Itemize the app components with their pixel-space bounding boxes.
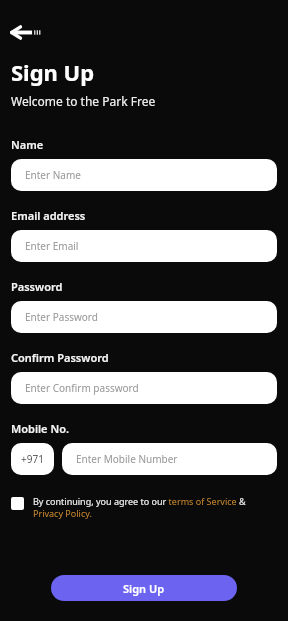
button[interactable]: +971 [11, 443, 54, 475]
staticText: Enter Email [25, 239, 79, 253]
staticText: +971 [21, 452, 44, 466]
button[interactable]: Enter Confirm password [11, 372, 277, 404]
button[interactable]: Enter Mobile Number [62, 443, 277, 475]
button[interactable]: Enter Email [11, 230, 277, 262]
staticText: Email address [11, 208, 86, 223]
staticText: Sign Up [11, 57, 95, 87]
staticText: Welcome to the Park Free [11, 93, 156, 109]
staticText: Confirm Password [11, 350, 109, 365]
staticText: Enter Name [25, 168, 81, 182]
staticText: Sign Up [123, 581, 165, 596]
staticText: Password [11, 279, 63, 294]
staticText: Enter Password [25, 310, 98, 324]
staticText: Name [11, 137, 44, 152]
button[interactable]: Back [11, 24, 49, 40]
button[interactable]: Accept terms [11, 497, 24, 510]
staticText: Mobile No. [11, 421, 69, 436]
button[interactable]: Sign Up [51, 575, 237, 601]
staticText: Enter Confirm password [25, 381, 139, 395]
button[interactable]: Enter Name [11, 159, 277, 191]
button[interactable]: By continuing, you agree to our terms of… [33, 495, 277, 520]
button[interactable]: Enter Password [11, 301, 277, 333]
staticText: Enter Mobile Number [76, 452, 178, 466]
